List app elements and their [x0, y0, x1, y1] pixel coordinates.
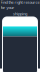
staticText: shipping — [13, 11, 27, 16]
staticText: Find the right resource for your — [0, 0, 39, 10]
